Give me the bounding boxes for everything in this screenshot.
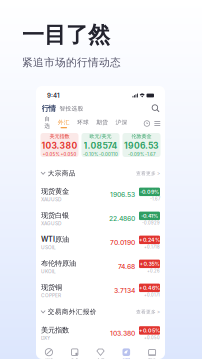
staticText: 1.08574: [83, 140, 117, 151]
staticText: 欧元/美元: [89, 133, 111, 139]
staticText: +0.05%: [139, 327, 160, 334]
staticText: 103.380: [41, 140, 77, 151]
staticText: +0.0171: [144, 293, 160, 298]
staticText: 行情: [45, 357, 53, 359]
button[interactable]: 美元指数: [36, 321, 165, 345]
staticText: +0.46%: [139, 285, 160, 291]
button[interactable]: 搜索: [152, 105, 159, 112]
staticText: -0.09% -1.67: [128, 152, 155, 157]
staticText: 紧追市场的行情动态: [22, 56, 121, 69]
button[interactable]: 现货白银: [36, 207, 165, 231]
staticText: 现货白银: [41, 211, 69, 220]
staticText: 1906.53: [124, 140, 159, 151]
button[interactable]: 行情: [36, 345, 62, 359]
staticText: 美元指数: [49, 133, 69, 139]
staticText: COPPER: [41, 292, 61, 298]
button[interactable]: 列表: [150, 120, 160, 127]
button[interactable]: 沪深: [112, 119, 131, 128]
staticText: 智投选股: [59, 105, 83, 112]
staticText: +0.26: [147, 269, 160, 274]
button[interactable]: 现货铜: [36, 279, 165, 303]
staticText: -0.10% -0.00110: [83, 152, 118, 157]
staticText: 金选: [96, 357, 104, 359]
staticText: +0.1718: [144, 245, 160, 250]
button[interactable]: 社区: [113, 345, 139, 359]
staticText: -1.67: [150, 197, 160, 202]
staticText: 103.380: [110, 329, 135, 337]
staticText: 布伦特原油: [41, 259, 76, 268]
staticText: 沪深: [115, 119, 127, 126]
button[interactable]: 查看更多 >: [136, 170, 160, 176]
staticText: 现货黄金: [41, 187, 69, 196]
staticText: 现货铜: [41, 283, 62, 292]
staticText: XAUUSD: [41, 196, 61, 202]
staticText: 自选: [44, 115, 50, 129]
staticText: 外汇: [58, 119, 70, 126]
button[interactable]: 伦敦黄金: [122, 133, 160, 157]
button[interactable]: 头条: [62, 345, 88, 359]
staticText: XAGUSD: [41, 220, 61, 226]
button[interactable]: 金选: [88, 345, 113, 359]
button[interactable]: 自选: [40, 115, 54, 132]
staticText: 期货: [96, 119, 108, 126]
button[interactable]: 期货: [93, 119, 112, 128]
staticText: 行情: [41, 104, 55, 113]
button[interactable]: 行情: [41, 104, 55, 113]
staticText: 交易商外汇报价: [48, 308, 97, 316]
staticText: 环球: [77, 119, 89, 126]
button[interactable]: 欧元/美元: [81, 133, 119, 157]
staticText: +0.050: [144, 335, 160, 340]
button[interactable]: 历史: [144, 120, 150, 127]
staticText: 9:41: [47, 92, 60, 99]
staticText: -0.09%: [140, 189, 159, 195]
button[interactable]: 环球: [73, 119, 93, 128]
staticText: 我的: [148, 357, 156, 359]
staticText: +0.24%: [139, 237, 160, 243]
button[interactable]: 我的: [139, 345, 165, 359]
staticText: 1906.53: [110, 191, 135, 199]
staticText: 伦敦黄金: [131, 133, 151, 139]
staticText: 3.7134: [114, 287, 135, 295]
button[interactable]: 查看更多 >: [136, 309, 160, 315]
staticText: UKOIL: [41, 268, 56, 274]
staticText: 22.4860: [109, 215, 135, 223]
button[interactable]: 智投选股: [55, 105, 83, 112]
staticText: 大宗商品: [48, 169, 76, 177]
staticText: 74.68: [118, 263, 135, 271]
staticText: 头条: [71, 357, 79, 359]
button[interactable]: 布伦特原油: [36, 255, 165, 279]
staticText: USOIL: [41, 244, 56, 250]
staticText: -0.0929: [142, 221, 160, 226]
staticText: -0.41%: [141, 213, 158, 219]
staticText: 查看更多 >: [136, 170, 160, 176]
staticText: +0.35%: [139, 261, 159, 267]
staticText: 一目了然: [22, 21, 110, 49]
staticText: 社区: [122, 357, 130, 359]
staticText: 美元指数: [41, 325, 69, 335]
button[interactable]: WTI原油: [36, 231, 165, 255]
staticText: 70.0190: [110, 239, 135, 247]
staticText: +0.05% +0.050: [42, 152, 76, 157]
staticText: WTI原油: [41, 235, 69, 244]
button[interactable]: 现货黄金: [36, 183, 165, 207]
button[interactable]: 美元指数: [40, 133, 78, 157]
staticText: 查看更多 >: [136, 309, 160, 315]
button[interactable]: 外汇: [54, 119, 73, 128]
staticText: DXY: [41, 335, 50, 341]
